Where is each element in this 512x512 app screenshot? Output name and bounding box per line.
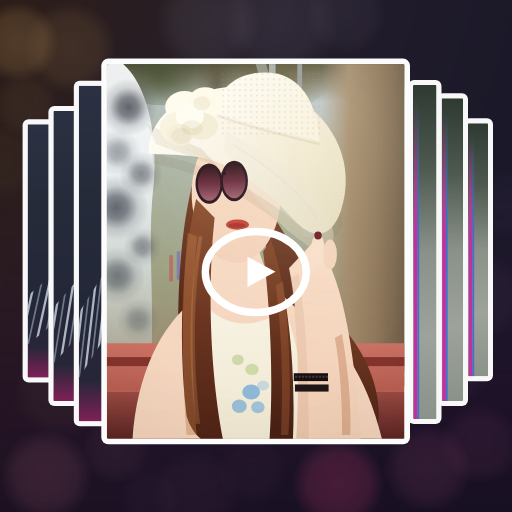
button[interactable]: Play video slideshow <box>0 0 512 512</box>
